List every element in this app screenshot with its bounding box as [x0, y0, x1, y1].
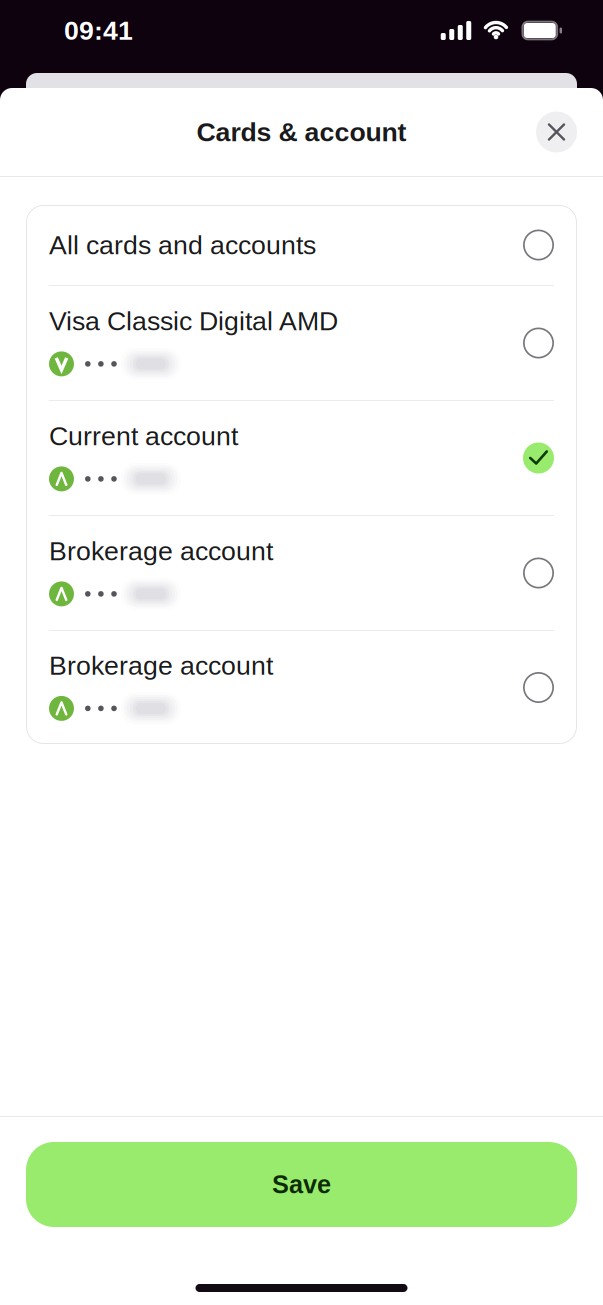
button[interactable]: Brokerage account: [26, 516, 577, 630]
button[interactable]: Visa Classic Digital AMD: [26, 286, 577, 400]
staticText: 09:41: [64, 16, 133, 45]
button[interactable]: Save: [0, 1142, 603, 1227]
staticText: Visa Classic Digital AMD: [49, 306, 338, 336]
staticText: Save: [272, 1170, 331, 1199]
button[interactable]: All cards and accounts: [26, 205, 577, 285]
staticText: Current account: [49, 421, 238, 451]
button[interactable]: Brokerage account: [26, 631, 577, 744]
staticText: Brokerage account: [49, 651, 273, 680]
staticText: Cards & account: [196, 117, 406, 147]
button[interactable]: Close: [536, 111, 577, 152]
button[interactable]: Current account: [26, 401, 577, 515]
staticText: Brokerage account: [49, 536, 273, 566]
staticText: All cards and accounts: [49, 230, 316, 260]
